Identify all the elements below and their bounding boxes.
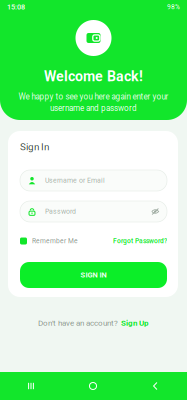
button[interactable]: Sign Up [121,318,149,328]
staticText: username and password [50,103,137,113]
button[interactable]: Back [124,372,187,400]
staticText: SIGN IN [80,271,106,279]
staticText: Forgot Password? [113,237,167,245]
staticText: Welcome Back! [44,68,143,85]
button[interactable]: Recent apps [0,372,62,400]
staticText: We happy to see you here again enter you… [18,92,168,101]
staticText: Sign In [20,141,49,153]
button[interactable]: SIGN IN [20,262,167,288]
staticText: 15:08 [7,3,25,11]
staticText: Remember Me [32,237,78,245]
staticText: Don't have an account? [38,318,118,328]
staticText: Password [45,207,76,215]
staticText: Sign Up [121,318,149,328]
button[interactable]: Forgot Password? [113,236,167,246]
button[interactable]: Home [62,372,124,400]
staticText: Username or Email [45,176,105,184]
button[interactable]: Remember Me [20,236,78,246]
staticText: 98% [167,3,180,11]
